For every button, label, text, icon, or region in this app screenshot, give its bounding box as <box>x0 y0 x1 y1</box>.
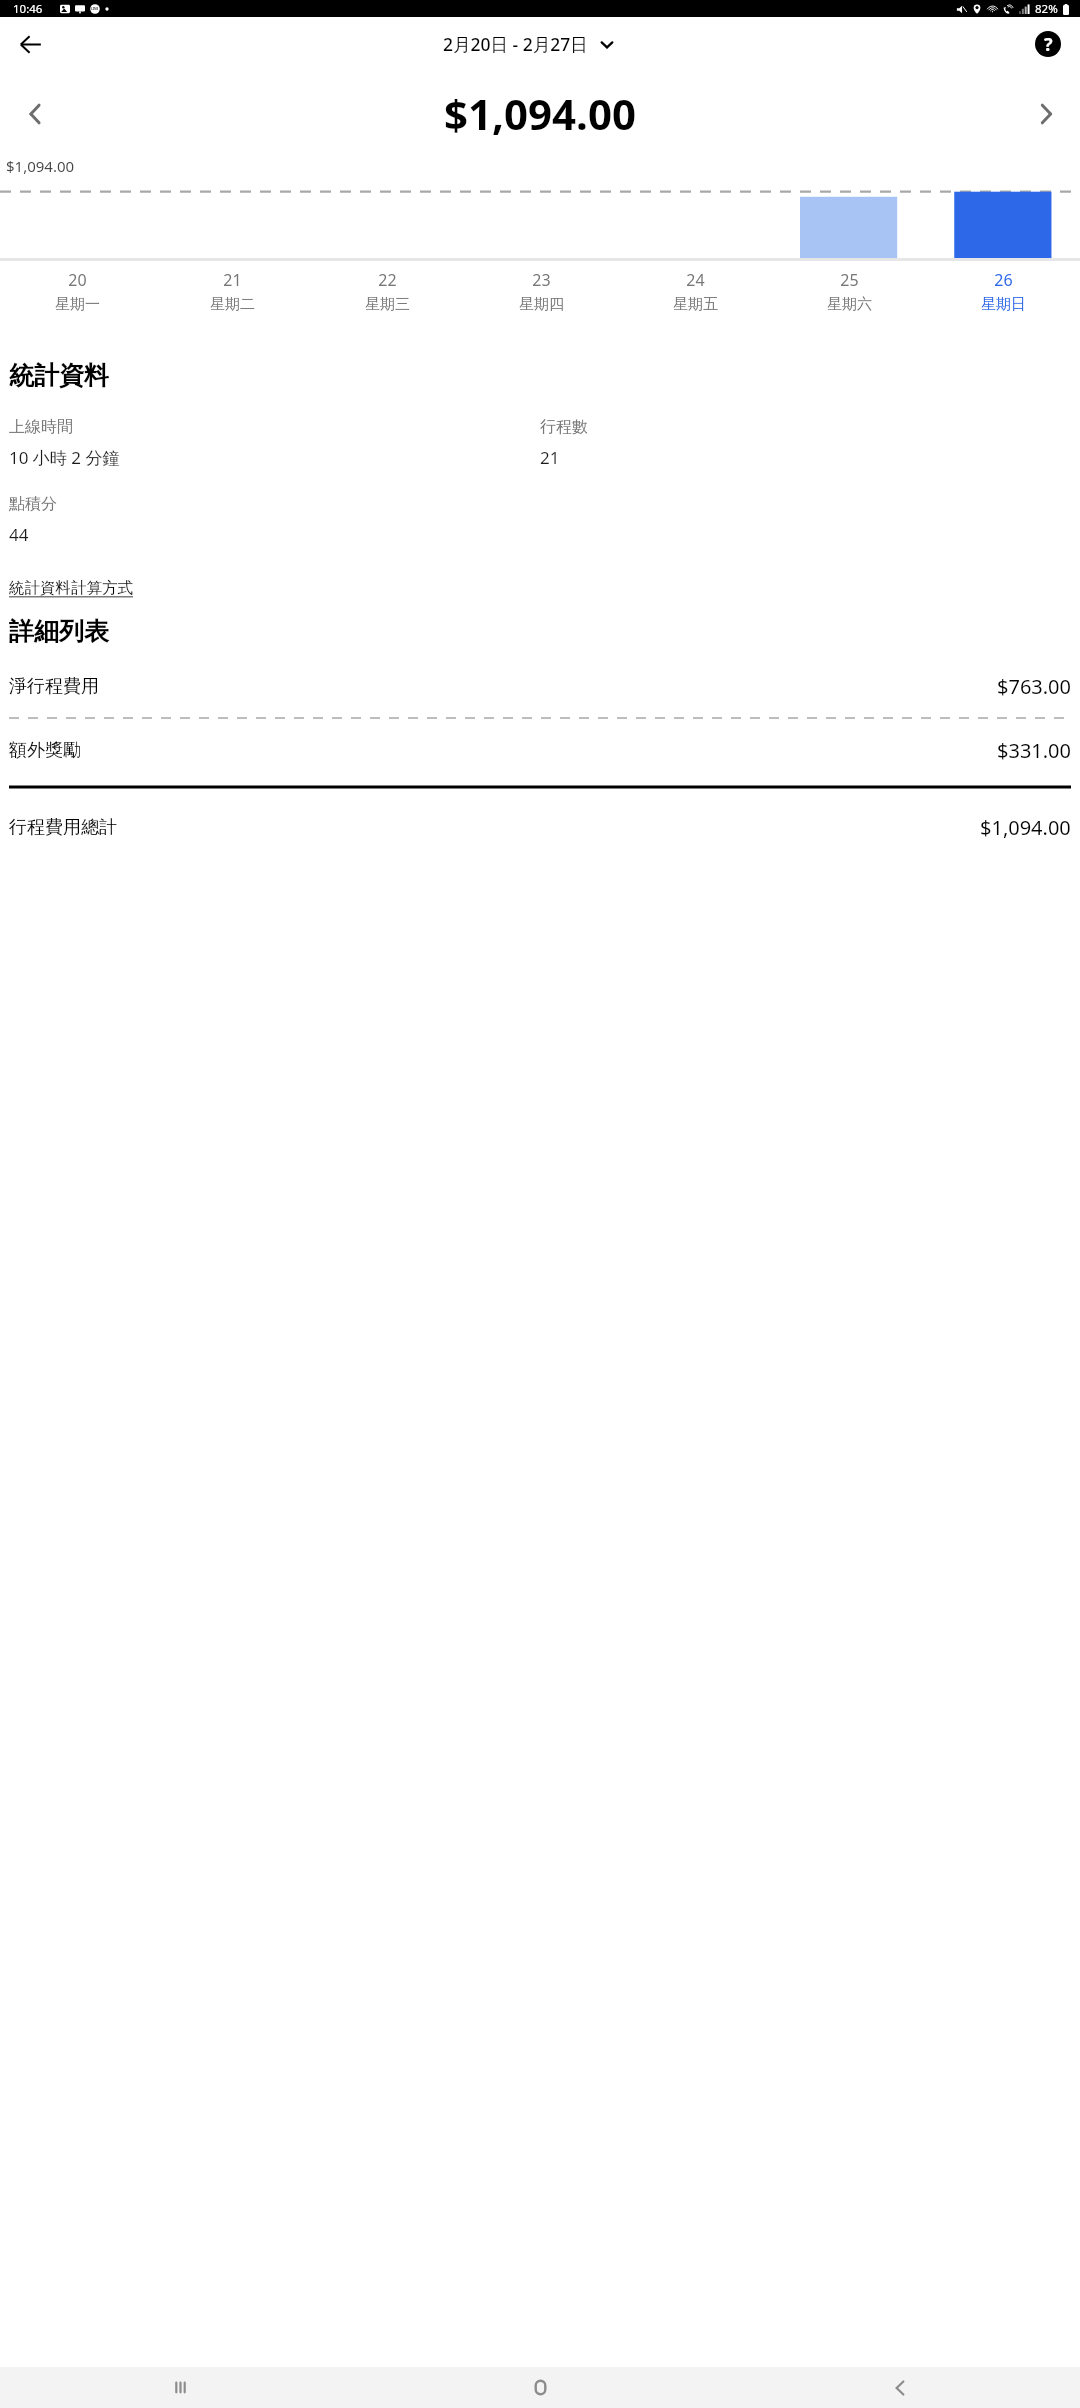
staticText: 額外獎勵 <box>9 739 81 762</box>
button[interactable]: 25 <box>772 269 926 314</box>
staticText: 星期四 <box>519 295 564 314</box>
staticText: 22 <box>378 269 397 291</box>
button[interactable]: Recent apps <box>0 2367 360 2408</box>
staticText: 82% <box>1035 1 1058 17</box>
button[interactable]: 淨行程費用 <box>9 669 1071 704</box>
button[interactable]: Home <box>360 2367 720 2408</box>
staticText: 21 <box>540 446 560 469</box>
staticText: $1,094.00 <box>444 85 636 142</box>
staticText: 星期二 <box>210 295 255 314</box>
staticText: $1,094.00 <box>980 814 1071 841</box>
staticText: 星期一 <box>55 295 100 314</box>
staticText: 行程數 <box>540 417 588 437</box>
button[interactable]: Next week <box>1020 88 1072 140</box>
staticText: 上線時間 <box>9 417 73 437</box>
staticText: 20 <box>68 269 87 291</box>
staticText: 行程費用總計 <box>9 816 117 839</box>
button[interactable]: 24 <box>618 269 772 314</box>
button[interactable]: Previous week <box>8 88 60 140</box>
staticText: 點積分 <box>9 494 57 514</box>
button[interactable]: Back <box>8 22 52 66</box>
staticText: 統計資料 <box>9 360 109 391</box>
staticText: 44 <box>9 523 29 546</box>
button[interactable]: 21 <box>155 269 310 314</box>
staticText: 24 <box>686 269 705 291</box>
staticText: 詳細列表 <box>9 616 109 647</box>
staticText: 25 <box>840 269 859 291</box>
button[interactable]: 額外獎勵 <box>9 733 1071 768</box>
staticText: 星期日 <box>981 295 1026 314</box>
staticText: 23 <box>532 269 551 291</box>
button[interactable]: 23 <box>464 269 618 314</box>
staticText: $763.00 <box>997 673 1071 700</box>
button[interactable]: Back <box>720 2367 1080 2408</box>
staticText: ? <box>1044 32 1053 57</box>
staticText: 星期三 <box>365 295 410 314</box>
staticText: 21 <box>223 269 242 291</box>
staticText: $331.00 <box>997 737 1071 764</box>
staticText: 星期五 <box>673 295 718 314</box>
button[interactable]: 行程費用總計 <box>9 810 1071 845</box>
button[interactable]: 統計資料計算方式 <box>9 576 133 600</box>
staticText: 統計資料計算方式 <box>9 578 133 598</box>
staticText: 26 <box>994 269 1013 291</box>
button[interactable]: 2月20日 - 2月27日 <box>437 28 620 60</box>
button[interactable]: 22 <box>310 269 464 314</box>
staticText: 星期六 <box>827 295 872 314</box>
staticText: $1,094.00 <box>6 156 75 176</box>
staticText: 10:46 <box>13 1 43 17</box>
button[interactable]: 20 <box>0 269 155 314</box>
button[interactable]: Help <box>1026 22 1070 66</box>
button[interactable]: 26 <box>926 269 1080 314</box>
staticText: LINE <box>91 7 99 11</box>
staticText: 淨行程費用 <box>9 675 99 698</box>
staticText: 2月20日 - 2月27日 <box>443 32 588 56</box>
staticText: 10 小時 2 分鐘 <box>9 446 120 469</box>
